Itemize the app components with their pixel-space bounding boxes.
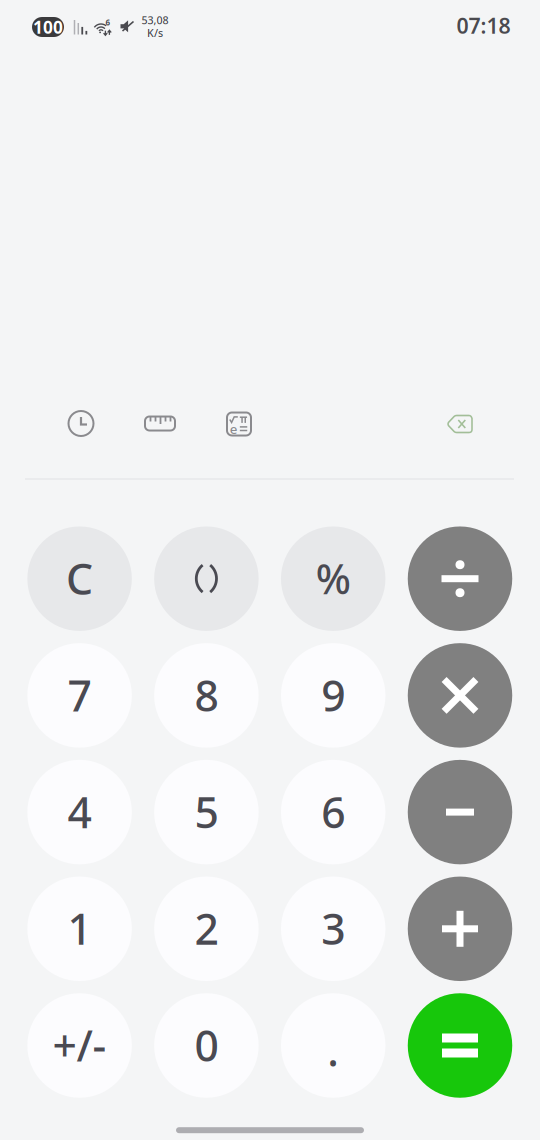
button[interactable]: C: [27, 526, 132, 631]
button[interactable]: Divide: [408, 526, 512, 631]
button[interactable]: Equals: [408, 993, 512, 1098]
staticText: .: [327, 1022, 339, 1078]
staticText: 3: [321, 900, 345, 957]
staticText: C: [66, 550, 93, 607]
staticText: 8: [194, 667, 218, 723]
staticText: K/s: [147, 26, 163, 40]
button[interactable]: 0: [154, 993, 259, 1098]
button[interactable]: Delete: [430, 396, 490, 452]
button[interactable]: 5: [154, 760, 259, 864]
staticText: 6: [105, 17, 110, 28]
button[interactable]: Multiply: [408, 643, 512, 748]
button[interactable]: 7: [27, 643, 132, 748]
button[interactable]: 9: [281, 643, 385, 748]
staticText: 100: [33, 15, 63, 38]
staticText: 7: [68, 667, 92, 723]
button[interactable]: .: [281, 993, 385, 1098]
button[interactable]: Minus: [408, 760, 512, 864]
staticText: 07:18: [456, 11, 510, 40]
button[interactable]: Parentheses: [154, 526, 259, 631]
staticText: 6: [321, 783, 345, 840]
staticText: 9: [321, 667, 345, 723]
staticText: 5: [194, 783, 218, 840]
staticText: %: [316, 551, 351, 606]
staticText: 2: [194, 900, 218, 957]
staticText: 53,08: [141, 13, 168, 27]
staticText: e: [230, 420, 238, 438]
button[interactable]: 6: [281, 760, 385, 864]
button[interactable]: 4: [27, 760, 132, 864]
button[interactable]: Unit converter: [132, 395, 188, 451]
button[interactable]: History: [53, 395, 109, 451]
staticText: +/-: [53, 1017, 107, 1073]
button[interactable]: 2: [154, 877, 259, 981]
button[interactable]: 3: [281, 877, 385, 981]
button[interactable]: Scientific calculator: [211, 396, 267, 452]
staticText: 4: [68, 783, 92, 840]
button[interactable]: +/-: [27, 993, 132, 1098]
button[interactable]: Plus: [408, 877, 512, 981]
button[interactable]: 1: [27, 877, 132, 981]
staticText: 0: [194, 1017, 218, 1073]
button[interactable]: 8: [154, 643, 259, 748]
button[interactable]: %: [281, 526, 385, 631]
staticText: 1: [68, 900, 92, 957]
